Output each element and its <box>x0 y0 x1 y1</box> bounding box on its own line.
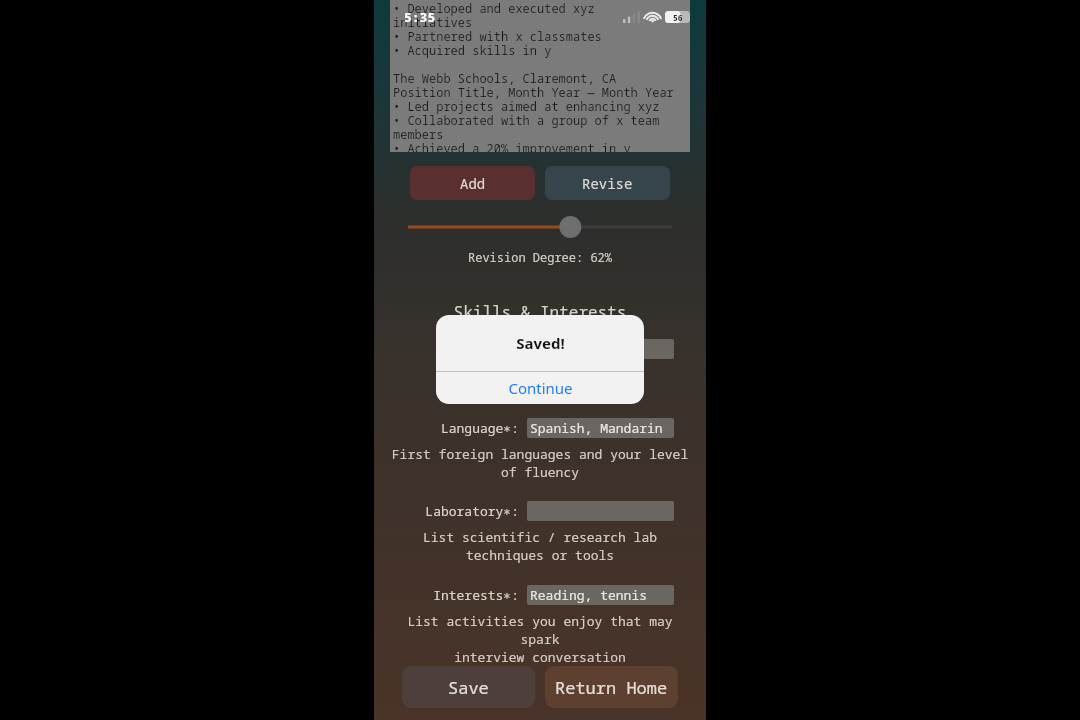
staticText: Skills & Interests <box>374 301 706 323</box>
button[interactable]: Return Home <box>545 666 678 708</box>
button[interactable]: Homework <box>527 339 674 359</box>
staticText: Continue <box>508 378 573 398</box>
staticText: Homework <box>530 340 593 358</box>
staticText: Save <box>448 676 489 699</box>
staticText: First foreign languages and your level o… <box>386 445 694 481</box>
staticText: List activities you enjoy that may spark… <box>386 612 694 666</box>
button[interactable]: Save <box>402 666 535 708</box>
staticText: List scientific / research lab technique… <box>386 528 694 564</box>
staticText: Interests∗: <box>433 586 519 604</box>
button[interactable]: Revision degree slider <box>408 216 672 238</box>
staticText: Return Home <box>555 676 668 699</box>
staticText: Add <box>460 174 486 193</box>
button[interactable]: Continue <box>436 372 644 404</box>
button[interactable]: Reading, tennis <box>527 585 674 605</box>
button[interactable]: Spanish, Mandarin <box>527 418 674 438</box>
button[interactable]: Revise <box>545 166 670 200</box>
staticText: 56 <box>673 12 683 23</box>
staticText: Language∗: <box>440 419 519 437</box>
button[interactable]: • Developed and executed xyz initiatives… <box>390 0 690 152</box>
staticText: • Developed and executed xyz initiatives… <box>393 0 674 152</box>
button[interactable]: Add <box>410 166 535 200</box>
staticText: 5:35 <box>404 8 436 26</box>
staticText: Reading, tennis <box>530 586 648 604</box>
staticText: Revision Degree: 62% <box>374 249 706 265</box>
staticText: Saved! <box>516 333 565 353</box>
staticText: Revise <box>582 174 633 193</box>
staticText: Spanish, Mandarin <box>530 419 663 437</box>
staticText: Laboratory∗: <box>425 502 519 520</box>
staticText: Tech∗: <box>472 340 519 358</box>
staticText: List programming languages & fluency <box>386 366 694 402</box>
